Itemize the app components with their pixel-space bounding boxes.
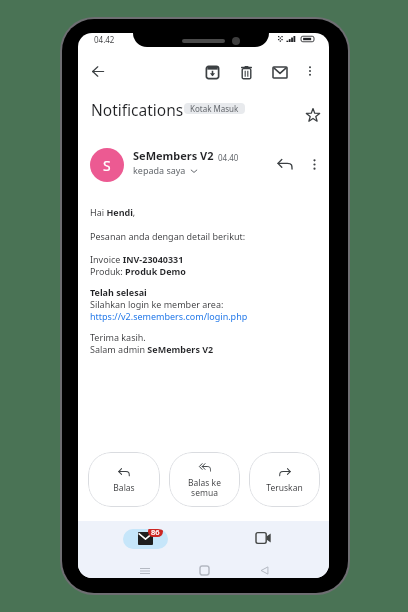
staticText: Notifications bbox=[91, 99, 184, 120]
button[interactable]: Back bbox=[86, 59, 110, 83]
button[interactable]: Sender avatar bbox=[90, 148, 124, 182]
staticText: Salam admin SeMembers V2 bbox=[90, 343, 214, 355]
button[interactable]: Reply bbox=[274, 153, 296, 175]
button[interactable]: Mark as unread bbox=[268, 60, 292, 84]
staticText: Teruskan bbox=[266, 482, 303, 494]
button[interactable]: More options bbox=[304, 154, 324, 174]
staticText: Balas bbox=[113, 482, 135, 494]
staticText: Produk: Produk Demo bbox=[90, 265, 186, 277]
button[interactable]: Teruskan bbox=[249, 452, 320, 507]
staticText: kepada saya bbox=[133, 164, 186, 176]
button[interactable]: Meet bbox=[251, 526, 275, 550]
staticText: Balas ke semua bbox=[188, 477, 221, 499]
button[interactable]: Mail bbox=[123, 529, 168, 549]
staticText: S bbox=[103, 156, 111, 175]
button[interactable]: Star bbox=[303, 105, 323, 125]
staticText: Hai Hendi, bbox=[90, 206, 136, 218]
staticText: Terima kasih. bbox=[90, 331, 146, 343]
staticText: SeMembers V2 bbox=[133, 148, 214, 163]
staticText: Pesanan anda dengan detail berikut: bbox=[90, 230, 246, 242]
button[interactable]: Balas bbox=[88, 452, 160, 507]
button[interactable]: Delete bbox=[234, 60, 258, 84]
staticText: 04.40 bbox=[218, 152, 239, 163]
staticText: 04.42 bbox=[94, 34, 115, 45]
staticText: https://v2.semembers.com/login.php bbox=[90, 310, 248, 322]
staticText: Silahkan login ke member area: bbox=[90, 298, 224, 310]
button[interactable]: Balas ke semua bbox=[169, 452, 240, 507]
button[interactable]: More options bbox=[298, 59, 322, 83]
staticText: 86 bbox=[151, 529, 160, 537]
staticText: Kotak Masuk bbox=[190, 103, 239, 114]
staticText: Invoice INV-23040331 bbox=[90, 253, 184, 265]
button[interactable]: Archive bbox=[200, 60, 224, 84]
staticText: Telah selesai bbox=[90, 286, 147, 298]
